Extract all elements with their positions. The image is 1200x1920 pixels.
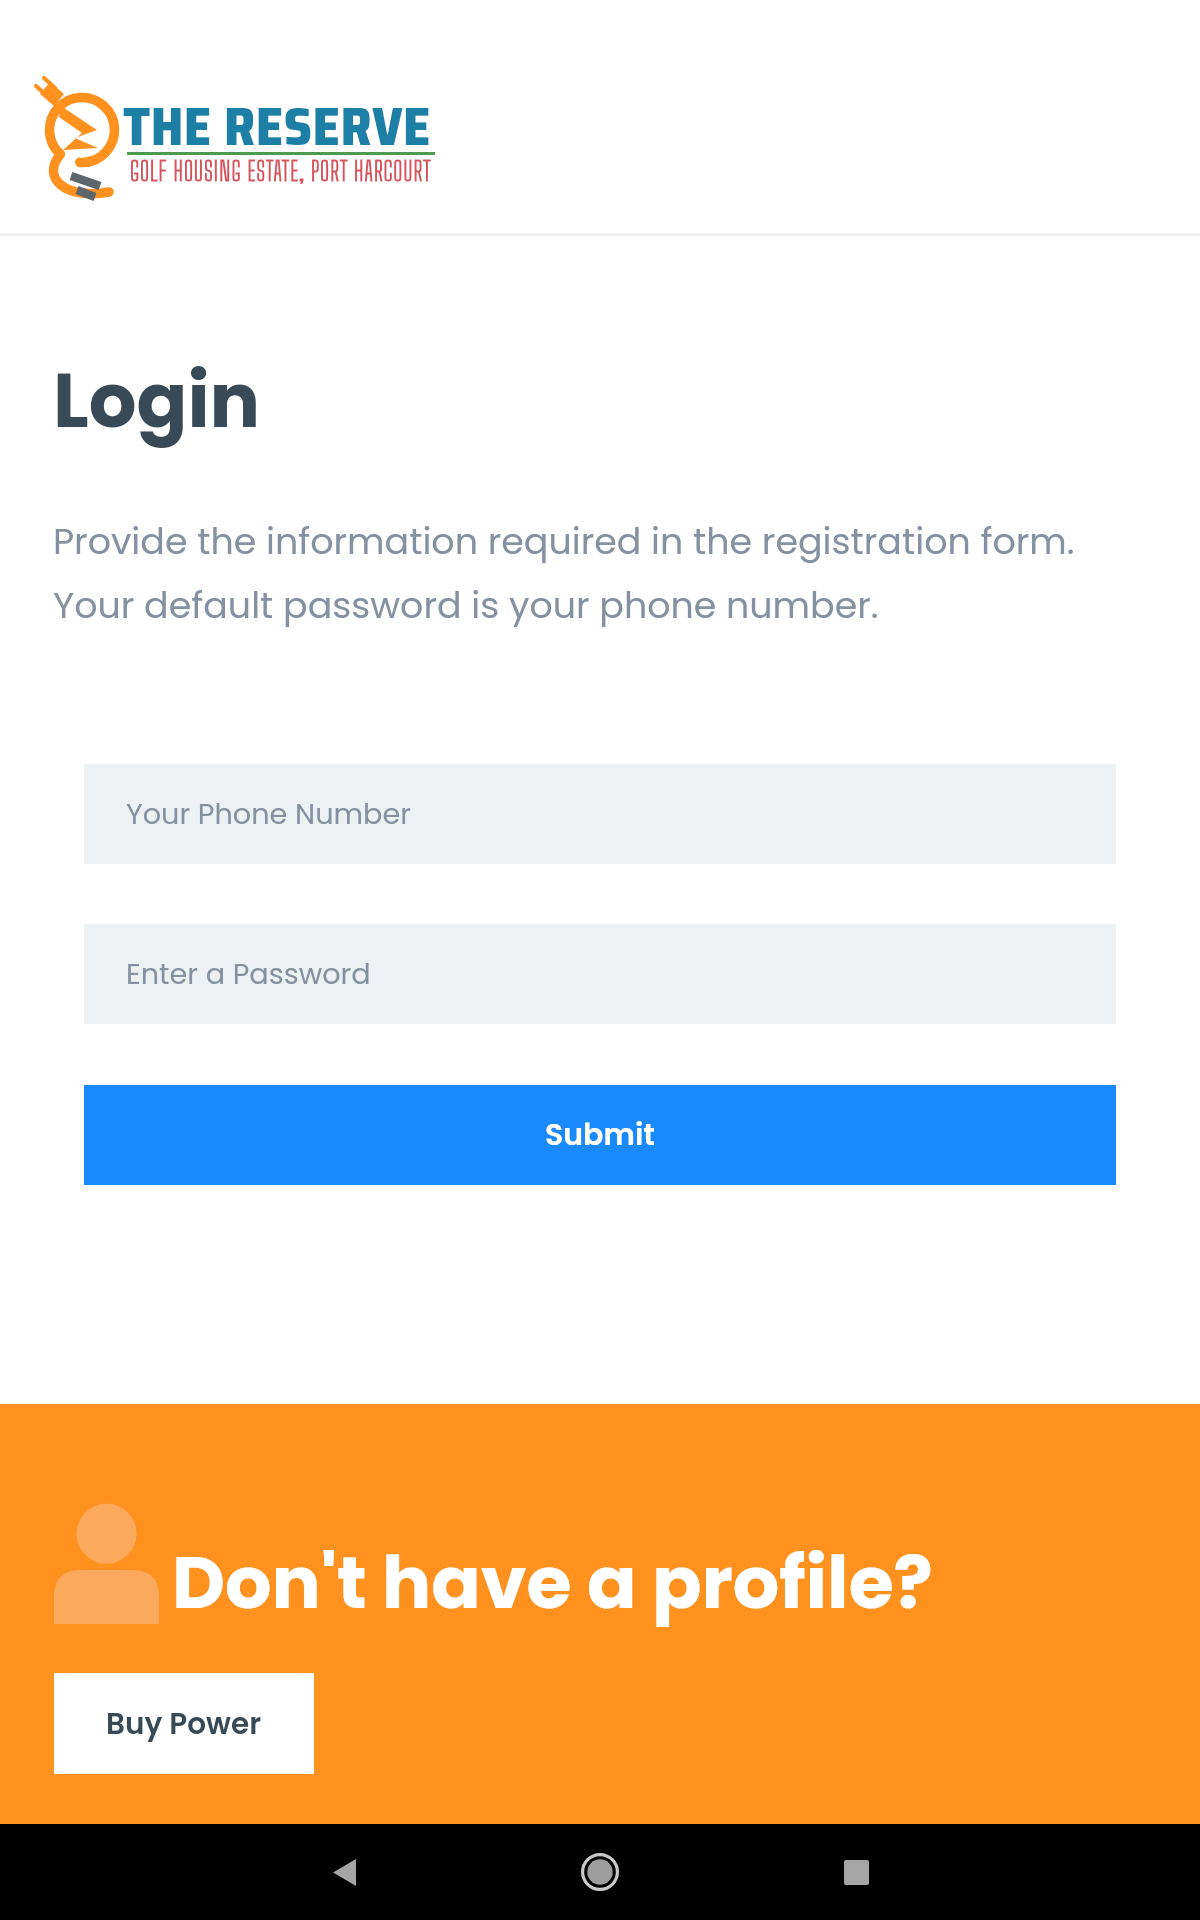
button[interactable]: Submit: [84, 1085, 1116, 1185]
staticText: Provide the information required in the …: [53, 516, 1075, 631]
staticText: Login: [53, 348, 261, 453]
button[interactable]: Buy Power: [54, 1673, 314, 1774]
button[interactable]: Enter a Password: [84, 924, 1116, 1024]
button[interactable]: Back: [296, 1824, 392, 1920]
staticText: Submit: [545, 1114, 655, 1156]
staticText: THE RESERVE: [123, 85, 432, 168]
button[interactable]: Your Phone Number: [84, 764, 1116, 864]
staticText: GOLF HOUSING ESTATE, PORT HARCOURT: [130, 155, 432, 186]
staticText: Buy Power: [106, 1703, 262, 1744]
button[interactable]: The Reserve, Golf Housing Estate, Port H…: [31, 70, 501, 230]
staticText: Your Phone Number: [126, 794, 411, 834]
button[interactable]: Home: [552, 1824, 648, 1920]
staticText: Don't have a profile?: [172, 1531, 933, 1633]
button[interactable]: Recent apps: [808, 1824, 904, 1920]
staticText: Enter a Password: [126, 954, 371, 994]
